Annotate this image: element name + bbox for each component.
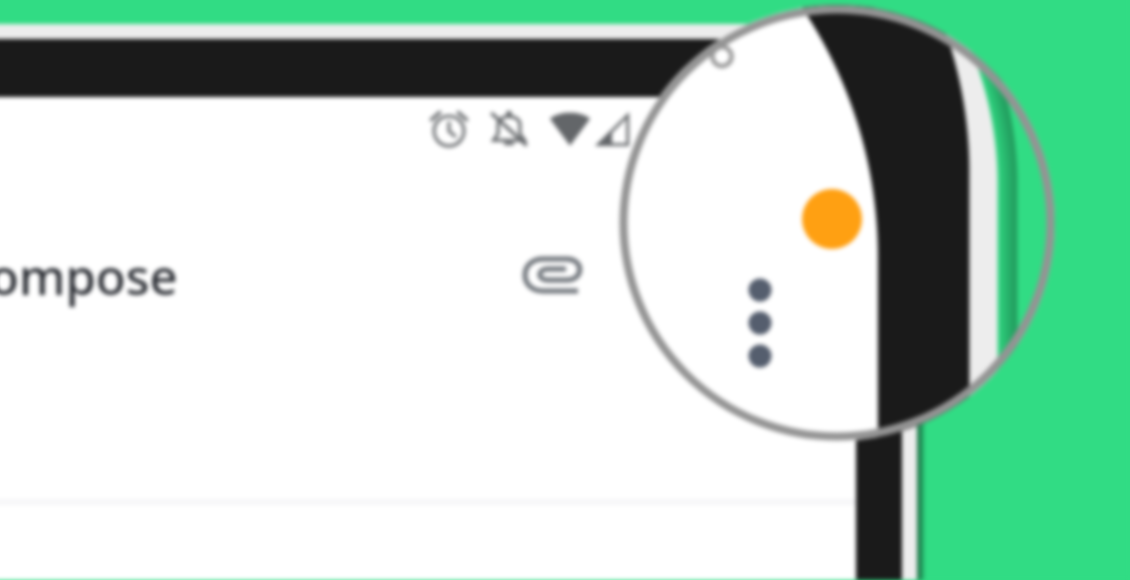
other: Compose screen preview with magnifier (0, 0, 1130, 580)
